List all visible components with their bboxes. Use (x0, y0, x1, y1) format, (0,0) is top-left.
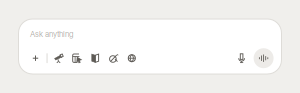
button[interactable]: Research (51, 50, 67, 66)
button[interactable]: Connected apps (69, 50, 85, 66)
button[interactable]: Dictate (234, 50, 250, 66)
button[interactable]: Library (87, 50, 103, 66)
staticText: Ask anything (30, 29, 74, 39)
button[interactable]: Health (105, 50, 121, 66)
button[interactable]: Voice mode (254, 48, 274, 68)
button[interactable]: Web search (124, 50, 140, 66)
button[interactable]: Add (27, 50, 43, 66)
